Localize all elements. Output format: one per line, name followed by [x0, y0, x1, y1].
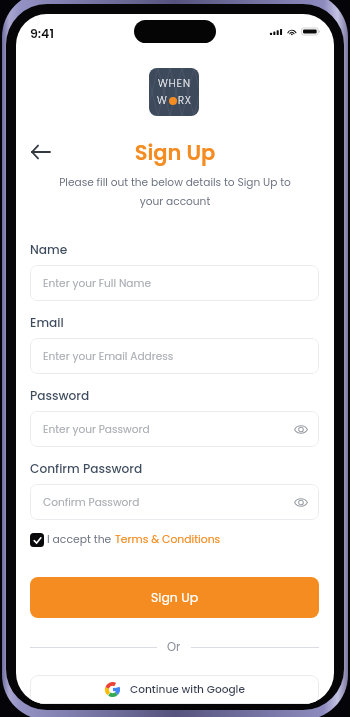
button[interactable]: Enter your Password — [30, 411, 319, 447]
button[interactable]: Sign Up — [30, 577, 319, 618]
staticText: Or — [167, 639, 181, 655]
staticText: Name — [30, 241, 68, 258]
staticText: Email — [30, 314, 64, 331]
staticText: W — [157, 93, 168, 108]
staticText: Confirm Password — [43, 495, 140, 510]
staticText: Continue with Google — [130, 682, 245, 697]
staticText: I accept the — [47, 532, 115, 547]
staticText: Enter your Email Address — [43, 349, 174, 364]
staticText: Enter your Full Name — [43, 276, 151, 291]
other: Show password — [294, 425, 308, 434]
other: Show password — [294, 498, 308, 507]
staticText: Enter your Password — [43, 422, 150, 437]
button[interactable]: Continue with Google — [30, 675, 319, 704]
staticText: Please fill out the below details to Sig… — [48, 175, 302, 209]
staticText: RX — [178, 93, 192, 108]
button[interactable]: Back — [22, 137, 58, 167]
button[interactable]: Enter your Email Address — [30, 338, 319, 374]
staticText: Confirm Password — [30, 460, 143, 477]
staticText: Sign Up — [16, 138, 334, 167]
button[interactable]: Enter your Full Name — [30, 265, 319, 301]
staticText: WHEN — [158, 76, 191, 91]
staticText: 9:41 — [30, 25, 54, 42]
other: Status icons — [270, 28, 321, 35]
staticText: Password — [30, 387, 90, 404]
button[interactable]: I accept the — [30, 532, 221, 547]
staticText: Sign Up — [151, 589, 199, 606]
button[interactable]: Confirm Password — [30, 484, 319, 520]
staticText: Terms & Conditions — [115, 532, 221, 547]
